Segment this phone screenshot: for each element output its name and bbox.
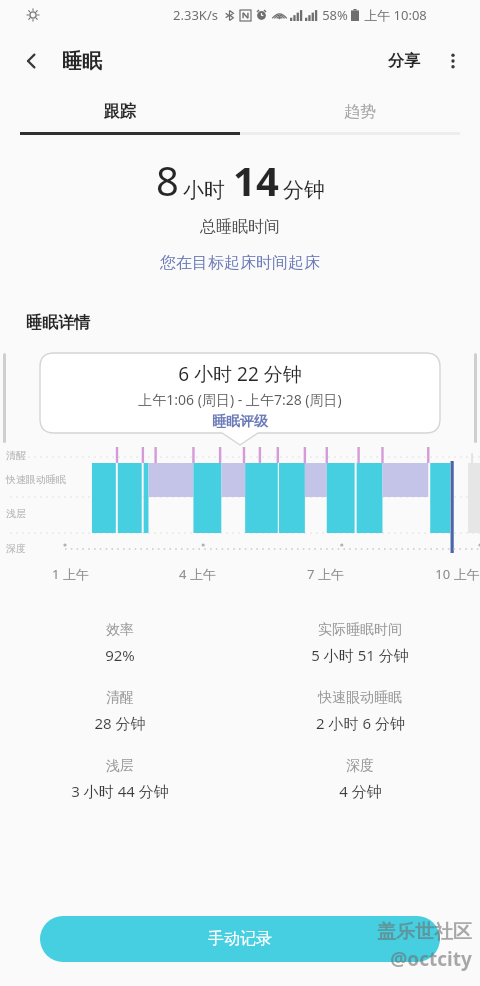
staticText: 5 小时 51 分钟 <box>311 645 409 665</box>
staticText: 效率 <box>106 621 134 639</box>
staticText: 58% <box>322 6 348 24</box>
staticText: 小时 <box>183 177 225 203</box>
staticText: 盖乐世社区 <box>377 920 472 944</box>
staticText: 4 上午 <box>179 565 216 583</box>
staticText: 7 上午 <box>307 565 344 583</box>
staticText: 清醒 <box>106 689 134 707</box>
staticText: 分享 <box>388 51 420 71</box>
staticText: 2.33K/s <box>173 6 218 24</box>
button[interactable]: 跟踪 <box>0 92 240 132</box>
staticText: 睡眠评级 <box>212 413 268 431</box>
staticText: 跟踪 <box>104 102 136 122</box>
staticText: 总睡眠时间 <box>200 217 280 237</box>
staticText: 8 <box>156 153 179 207</box>
staticText: 上午 10:08 <box>364 6 427 24</box>
staticText: 趋势 <box>344 102 376 122</box>
staticText: 睡眠 <box>62 49 102 74</box>
staticText: 浅层 <box>106 757 134 775</box>
staticText: 睡眠详情 <box>26 313 90 333</box>
staticText: 快速眼动睡眠 <box>6 473 66 486</box>
staticText: 4 分钟 <box>339 781 382 801</box>
staticText: 手动记录 <box>208 929 272 949</box>
staticText: 10 上午 <box>435 565 480 583</box>
staticText: 3 小时 44 分钟 <box>71 781 169 801</box>
button[interactable]: 分享 <box>378 41 430 81</box>
button[interactable]: 手动记录 <box>40 916 440 962</box>
staticText: 浅层 <box>6 507 26 520</box>
staticText: 6 小时 22 分钟 <box>178 361 302 387</box>
button[interactable]: More options <box>430 38 476 84</box>
staticText: 28 分钟 <box>94 713 146 733</box>
staticText: 您在目标起床时间起床 <box>160 253 320 273</box>
staticText: 实际睡眠时间 <box>318 621 402 639</box>
staticText: 14 <box>233 153 279 207</box>
staticText: 2 小时 6 分钟 <box>316 713 405 733</box>
staticText: @octcity <box>390 946 472 972</box>
button[interactable]: 6 小时 22 分钟 <box>40 353 440 431</box>
staticText: 快速眼动睡眠 <box>318 689 402 707</box>
button[interactable]: 趋势 <box>240 92 480 132</box>
button[interactable]: Back <box>8 37 56 85</box>
staticText: 分钟 <box>283 177 325 203</box>
staticText: 1 上午 <box>52 565 89 583</box>
staticText: 深度 <box>346 757 374 775</box>
staticText: 上午1:06 (周日) - 上午7:28 (周日) <box>138 390 342 409</box>
staticText: 深度 <box>6 542 26 555</box>
staticText: 清醒 <box>6 449 26 462</box>
staticText: 92% <box>105 645 135 665</box>
